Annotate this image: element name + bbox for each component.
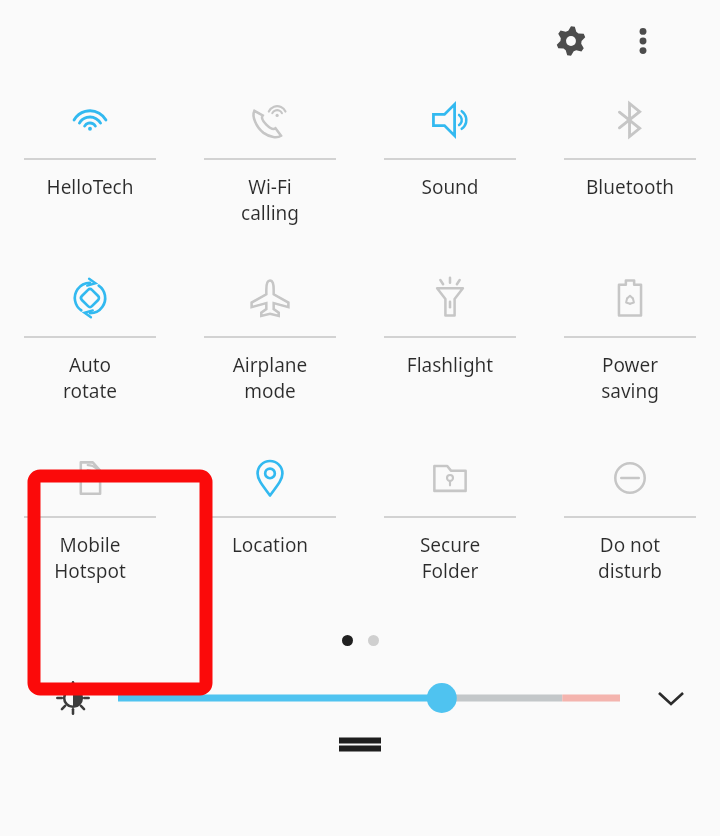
staticText: Location	[180, 532, 360, 558]
button[interactable]: Expand	[644, 671, 698, 725]
button[interactable]: Power saving	[540, 260, 720, 404]
staticText: Do not disturb	[540, 532, 720, 584]
button[interactable]: Bluetooth	[540, 82, 720, 200]
button[interactable]: More options	[614, 12, 672, 70]
staticText: Mobile Hotspot	[0, 532, 180, 584]
button[interactable]: Mobile Hotspot	[0, 440, 180, 584]
staticText: Wi-Fi calling	[180, 174, 360, 226]
staticText: Secure Folder	[360, 532, 540, 584]
button[interactable]: Wi-Fi calling	[180, 82, 360, 226]
button[interactable]: Airplane mode	[180, 260, 360, 404]
button[interactable]: Flashlight	[360, 260, 540, 378]
button[interactable]: Location	[180, 440, 360, 558]
button[interactable]: Do not disturb	[540, 440, 720, 584]
staticText: Power saving	[540, 352, 720, 404]
button[interactable]: Settings	[542, 12, 600, 70]
button[interactable]: Sound	[360, 82, 540, 200]
button[interactable]: HelloTech	[0, 82, 180, 200]
button[interactable]: Brightness mode	[50, 675, 96, 721]
staticText: Auto rotate	[0, 352, 180, 404]
button[interactable]: Secure Folder	[360, 440, 540, 584]
button[interactable]: Auto rotate	[0, 260, 180, 404]
staticText: Sound	[360, 174, 540, 200]
staticText: HelloTech	[0, 174, 180, 200]
button[interactable]: Brightness slider	[118, 676, 620, 720]
staticText: Flashlight	[360, 352, 540, 378]
staticText: Airplane mode	[180, 352, 360, 404]
staticText: Bluetooth	[540, 174, 720, 200]
